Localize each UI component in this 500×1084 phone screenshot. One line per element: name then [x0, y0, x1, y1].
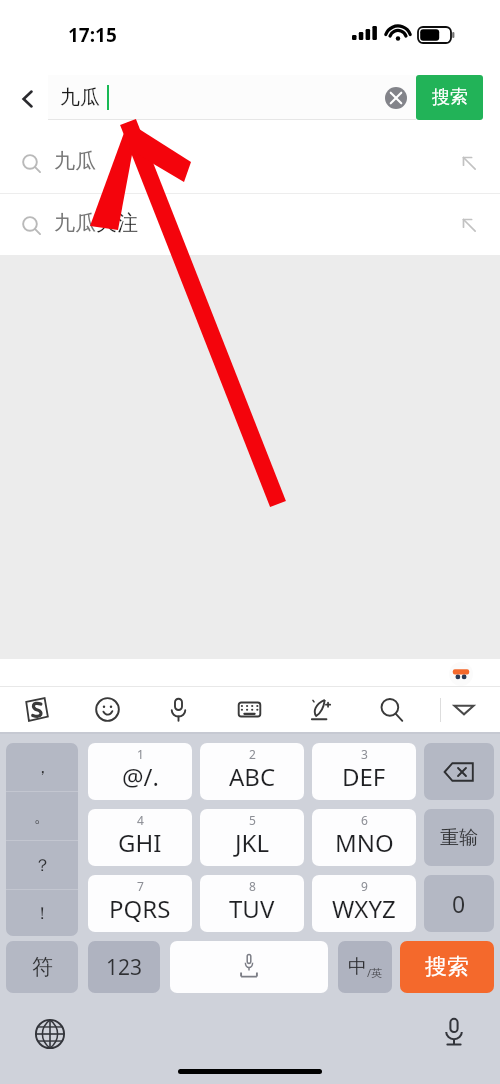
- button[interactable]: ？: [6, 841, 78, 889]
- staticText: PQRS: [109, 892, 171, 925]
- staticText: ABC: [229, 760, 276, 793]
- button[interactable]: Sogou: [16, 689, 56, 729]
- button[interactable]: 7: [88, 875, 192, 932]
- staticText: MNO: [335, 826, 394, 859]
- button[interactable]: 9: [312, 875, 416, 932]
- staticText: 17:15: [68, 22, 117, 48]
- staticText: WXYZ: [332, 892, 396, 925]
- button[interactable]: Backspace: [424, 743, 494, 800]
- button[interactable]: 6: [312, 809, 416, 866]
- staticText: 重输: [440, 826, 478, 850]
- button[interactable]: Space: [170, 941, 328, 993]
- staticText: 3: [361, 746, 368, 762]
- staticText: 0: [452, 888, 466, 919]
- staticText: JKL: [235, 826, 269, 859]
- button[interactable]: 3: [312, 743, 416, 800]
- button[interactable]: Fill in: [458, 152, 480, 174]
- staticText: DEF: [342, 760, 386, 793]
- staticText: 7: [137, 878, 144, 894]
- button[interactable]: Chinese English toggle: [338, 941, 392, 993]
- button[interactable]: Voice input: [158, 689, 198, 729]
- button[interactable]: 重输: [424, 809, 494, 866]
- button[interactable]: Emoji: [87, 689, 127, 729]
- button[interactable]: Language: [30, 1014, 70, 1054]
- staticText: 1: [137, 746, 144, 762]
- staticText: ，: [34, 757, 51, 778]
- button[interactable]: 。: [6, 792, 78, 840]
- staticText: 九瓜: [54, 148, 96, 174]
- button[interactable]: Hide keyboard: [444, 689, 484, 729]
- button[interactable]: Search: [371, 689, 411, 729]
- button[interactable]: 九瓜: [48, 75, 416, 120]
- staticText: 中: [348, 955, 367, 979]
- button[interactable]: Back: [8, 79, 48, 119]
- button[interactable]: ，: [6, 743, 78, 791]
- staticText: 5: [249, 812, 256, 828]
- staticText: ？: [34, 855, 51, 876]
- button[interactable]: 2: [200, 743, 304, 800]
- button[interactable]: 九瓜: [0, 132, 500, 193]
- button[interactable]: 123: [88, 941, 160, 993]
- button[interactable]: ！: [6, 890, 78, 936]
- button[interactable]: Fill in: [458, 214, 480, 236]
- staticText: TUV: [229, 892, 275, 925]
- button[interactable]: 0: [424, 875, 494, 932]
- staticText: GHI: [118, 826, 162, 859]
- staticText: 搜索: [432, 86, 468, 109]
- button[interactable]: Clear: [385, 87, 407, 109]
- staticText: 6: [361, 812, 368, 828]
- staticText: 搜索: [425, 953, 469, 981]
- staticText: 九瓜: [54, 210, 96, 236]
- staticText: 符: [32, 954, 53, 980]
- button[interactable]: 5: [200, 809, 304, 866]
- button[interactable]: 搜索: [416, 75, 483, 120]
- staticText: 。: [34, 806, 51, 827]
- staticText: ！: [34, 903, 51, 924]
- button[interactable]: 符: [6, 941, 78, 993]
- button[interactable]: Handwriting: [300, 689, 340, 729]
- staticText: 九瓜: [60, 85, 100, 110]
- button[interactable]: 8: [200, 875, 304, 932]
- staticText: 关注: [96, 210, 138, 236]
- staticText: 2: [249, 746, 256, 762]
- staticText: 4: [137, 812, 144, 828]
- staticText: /英: [367, 965, 383, 980]
- button[interactable]: 4: [88, 809, 192, 866]
- staticText: 123: [106, 953, 143, 982]
- button[interactable]: 搜索: [400, 941, 494, 993]
- button[interactable]: Voice input: [434, 1012, 474, 1052]
- staticText: 9: [361, 878, 368, 894]
- staticText: @/.: [122, 760, 159, 793]
- button[interactable]: 1: [88, 743, 192, 800]
- button[interactable]: 九瓜: [0, 194, 500, 255]
- button[interactable]: Keyboard: [229, 689, 269, 729]
- staticText: 8: [249, 878, 256, 894]
